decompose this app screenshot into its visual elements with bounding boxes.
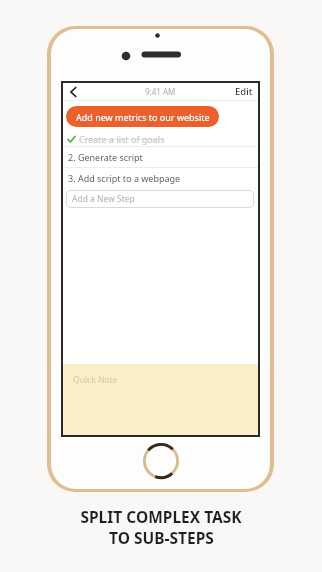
- button[interactable]: Add new metrics to our website: [66, 106, 219, 127]
- staticText: Add new metrics to our website: [76, 111, 210, 123]
- staticText: 2. Generate script: [68, 151, 143, 163]
- button[interactable]: 3. Add script to a webpage: [63, 168, 258, 188]
- staticText: 9:41 AM: [145, 86, 176, 97]
- staticText: Create a list of goals: [79, 133, 165, 145]
- button[interactable]: Edit: [235, 85, 253, 98]
- button[interactable]: Create a list of goals: [67, 131, 258, 146]
- button[interactable]: Add a New Step: [66, 190, 254, 208]
- staticText: SPLIT COMPLEX TASK: [80, 506, 242, 527]
- button[interactable]: 2. Generate script: [63, 147, 258, 167]
- button[interactable]: [69, 86, 79, 98]
- staticText: 3. Add script to a webpage: [68, 172, 181, 184]
- staticText: TO SUB-STEPS: [109, 527, 214, 548]
- button[interactable]: [141, 441, 181, 481]
- staticText: Quick Note: [73, 374, 118, 386]
- staticText: Add a New Step: [72, 193, 135, 205]
